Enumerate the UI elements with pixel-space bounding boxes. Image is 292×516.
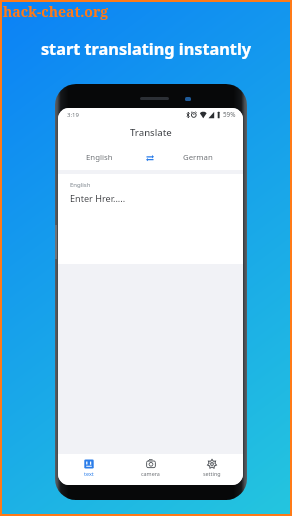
button[interactable]: setting [181, 454, 243, 485]
staticText: Translate [130, 126, 172, 139]
staticText: camera [141, 470, 160, 477]
button[interactable]: English [58, 146, 137, 170]
staticText: start translating instantly [2, 38, 290, 60]
staticText: 3:19 [67, 111, 79, 119]
button[interactable]: Swap languages [137, 146, 163, 170]
staticText: 59% [223, 110, 236, 119]
staticText: setting [203, 470, 221, 477]
staticText: Enter Hrer..... [70, 192, 126, 204]
staticText: hack-cheat.org [3, 2, 109, 21]
button[interactable]: German [163, 146, 243, 170]
staticText: German [183, 152, 213, 163]
button[interactable]: English [58, 174, 243, 264]
staticText: English [86, 152, 113, 163]
button[interactable]: text [58, 454, 119, 485]
staticText: text [84, 470, 94, 477]
staticText: English [70, 181, 91, 189]
button[interactable]: camera [119, 454, 181, 485]
